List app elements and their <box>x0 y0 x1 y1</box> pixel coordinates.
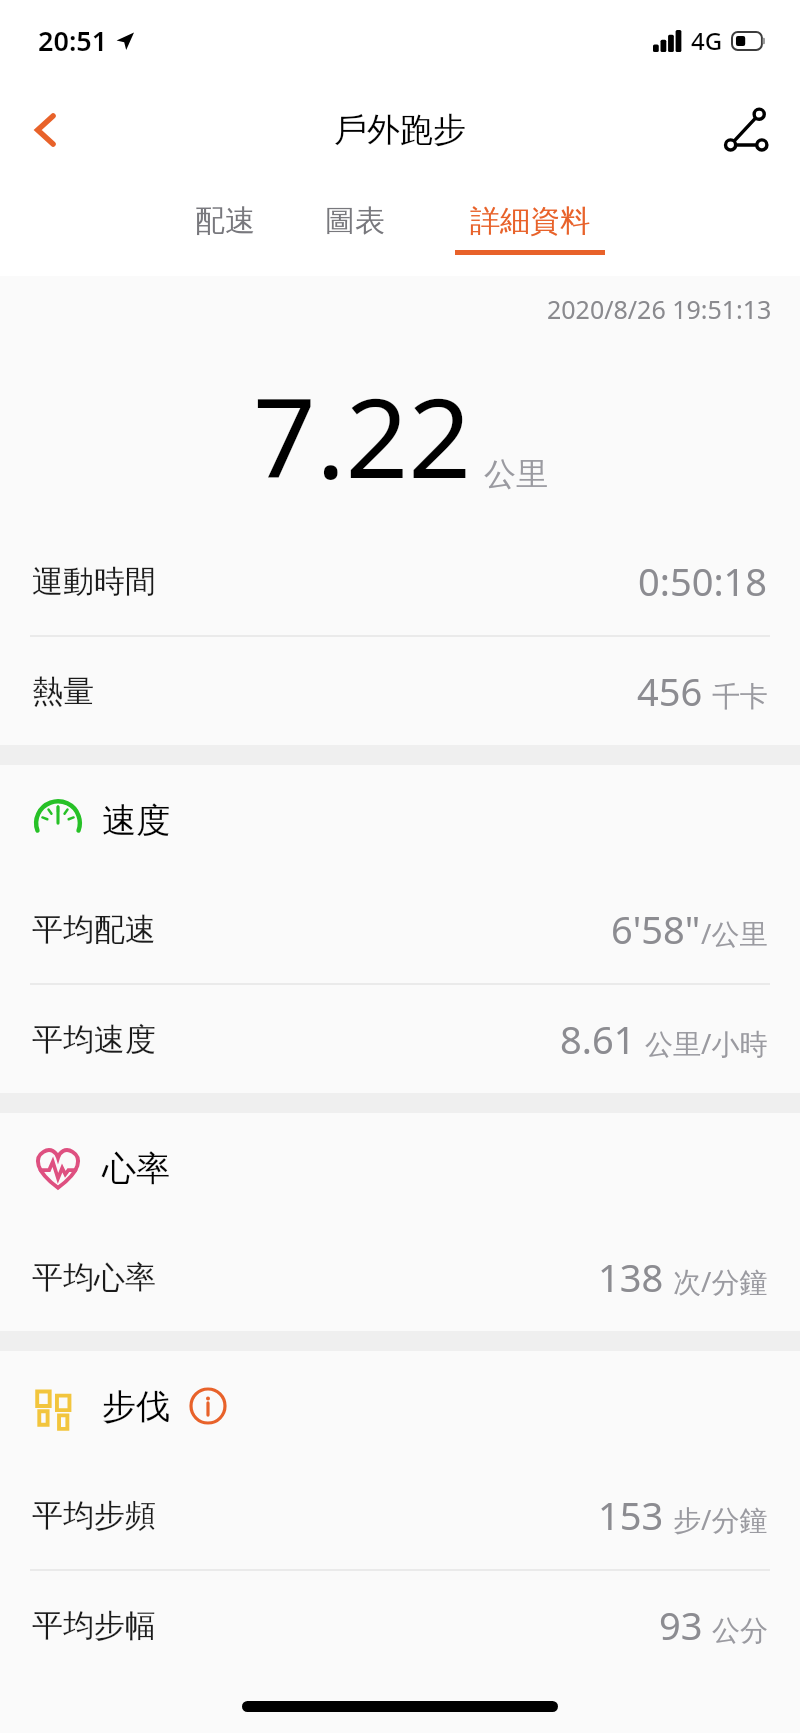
staticText: 4G <box>691 24 723 57</box>
staticText: 速度 <box>102 799 170 842</box>
button[interactable]: 平均心率 <box>0 1223 800 1331</box>
staticText: 運動時間 <box>32 562 156 601</box>
button[interactable]: 平均配速 <box>0 875 800 983</box>
staticText: 公里/小時 <box>645 1024 768 1062</box>
staticText: 93 <box>659 1599 703 1651</box>
staticText: 7.22 <box>253 360 472 510</box>
staticText: 心率 <box>102 1147 170 1190</box>
button[interactable]: 平均步幅 <box>0 1571 800 1679</box>
staticText: 8.61 <box>560 1013 636 1065</box>
staticText: 6'58" <box>611 903 701 955</box>
staticText: 平均速度 <box>32 1020 156 1059</box>
button[interactable]: 運動時間 <box>0 527 800 635</box>
staticText: 平均配速 <box>32 910 156 949</box>
staticText: 平均步幅 <box>32 1606 156 1645</box>
staticText: 公里 <box>484 454 548 494</box>
staticText: 次/分鐘 <box>673 1262 768 1300</box>
button[interactable]: Info <box>186 1384 230 1428</box>
button[interactable]: 熱量 <box>0 637 800 745</box>
staticText: 0:50:18 <box>638 555 768 607</box>
staticText: 步/分鐘 <box>673 1500 768 1538</box>
button[interactable]: 平均速度 <box>0 985 800 1093</box>
staticText: 熱量 <box>32 672 94 711</box>
staticText: 圖表 <box>325 202 385 240</box>
staticText: 153 <box>598 1489 664 1541</box>
button[interactable]: 詳細資料 <box>447 196 613 261</box>
staticText: 456 <box>637 665 703 717</box>
button[interactable]: 圖表 <box>317 196 393 261</box>
staticText: /公里 <box>701 914 768 952</box>
staticText: 138 <box>598 1251 664 1303</box>
staticText: 千卡 <box>712 679 768 714</box>
staticText: 詳細資料 <box>470 202 590 240</box>
staticText: 戶外跑步 <box>334 109 466 151</box>
staticText: 公分 <box>712 1613 768 1648</box>
staticText: 配速 <box>195 202 255 240</box>
button[interactable]: 配速 <box>187 196 263 261</box>
staticText: 步伐 <box>102 1385 170 1428</box>
staticText: 平均步頻 <box>32 1496 156 1535</box>
staticText: 2020/8/26 19:51:13 <box>547 292 772 326</box>
button[interactable]: 平均步頻 <box>0 1461 800 1569</box>
staticText: 平均心率 <box>32 1258 156 1297</box>
button[interactable]: Share <box>710 94 782 166</box>
staticText: 20:51 <box>38 22 108 59</box>
button[interactable]: Back <box>10 94 82 166</box>
